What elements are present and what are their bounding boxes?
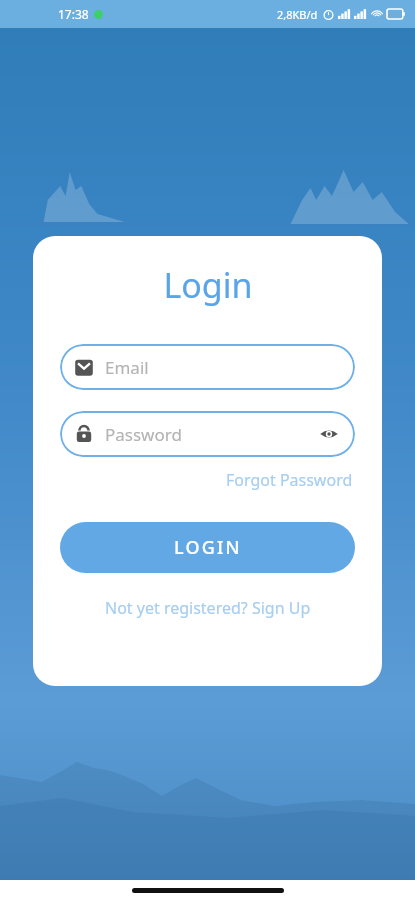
staticText: Email <box>105 356 341 379</box>
button[interactable]: Not yet registered? Sign Up <box>101 594 315 622</box>
staticText: 2,8KB/d <box>277 7 318 22</box>
button[interactable]: LOGIN <box>60 522 355 573</box>
button[interactable]: Email <box>60 344 355 390</box>
staticText: Forgot Password <box>226 469 353 491</box>
button[interactable]: Forgot Password <box>224 467 355 493</box>
staticText: Password <box>105 423 317 446</box>
button[interactable]: Show password <box>317 422 341 446</box>
staticText: Not yet registered? Sign Up <box>105 597 311 619</box>
staticText: 17:38 <box>58 6 89 22</box>
staticText: Login <box>163 262 253 308</box>
button[interactable]: Password <box>60 411 355 457</box>
staticText: LOGIN <box>174 535 242 560</box>
